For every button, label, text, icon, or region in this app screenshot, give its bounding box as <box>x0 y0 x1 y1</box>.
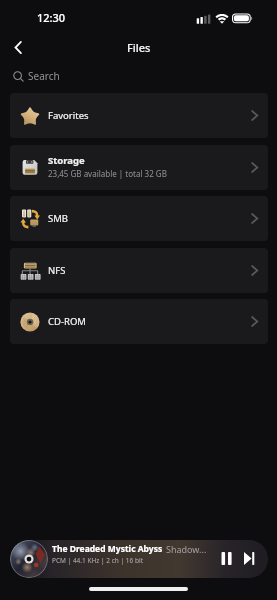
staticText: 12:30 <box>37 10 66 25</box>
button[interactable] <box>10 540 268 578</box>
staticText: SMB <box>48 212 69 225</box>
button[interactable]: Search <box>13 67 60 85</box>
staticText: Shadow... <box>166 543 207 555</box>
staticText: CD-ROM <box>48 315 86 328</box>
button[interactable]: SMB <box>10 196 268 241</box>
staticText: Files <box>127 40 151 55</box>
button[interactable]: CD-ROM <box>10 299 268 344</box>
button[interactable]: Storage <box>10 145 268 190</box>
button[interactable]: Pause <box>213 545 239 571</box>
staticText: Storage <box>48 154 85 167</box>
staticText: 23,45 GB available | total 32 GB <box>48 168 167 179</box>
staticText: Favorites <box>48 109 89 122</box>
staticText: Search <box>28 69 60 83</box>
staticText: The Dreaded Mystic Abyss <box>52 543 163 555</box>
staticText: NFS <box>48 264 66 277</box>
button[interactable]: NFS <box>10 248 268 293</box>
button[interactable]: Back <box>4 33 33 62</box>
button[interactable]: Next <box>236 545 262 571</box>
button[interactable]: Favorites <box>10 93 268 138</box>
staticText: PCM | 44.1 KHz | 2 ch | 16 bit <box>52 556 143 565</box>
